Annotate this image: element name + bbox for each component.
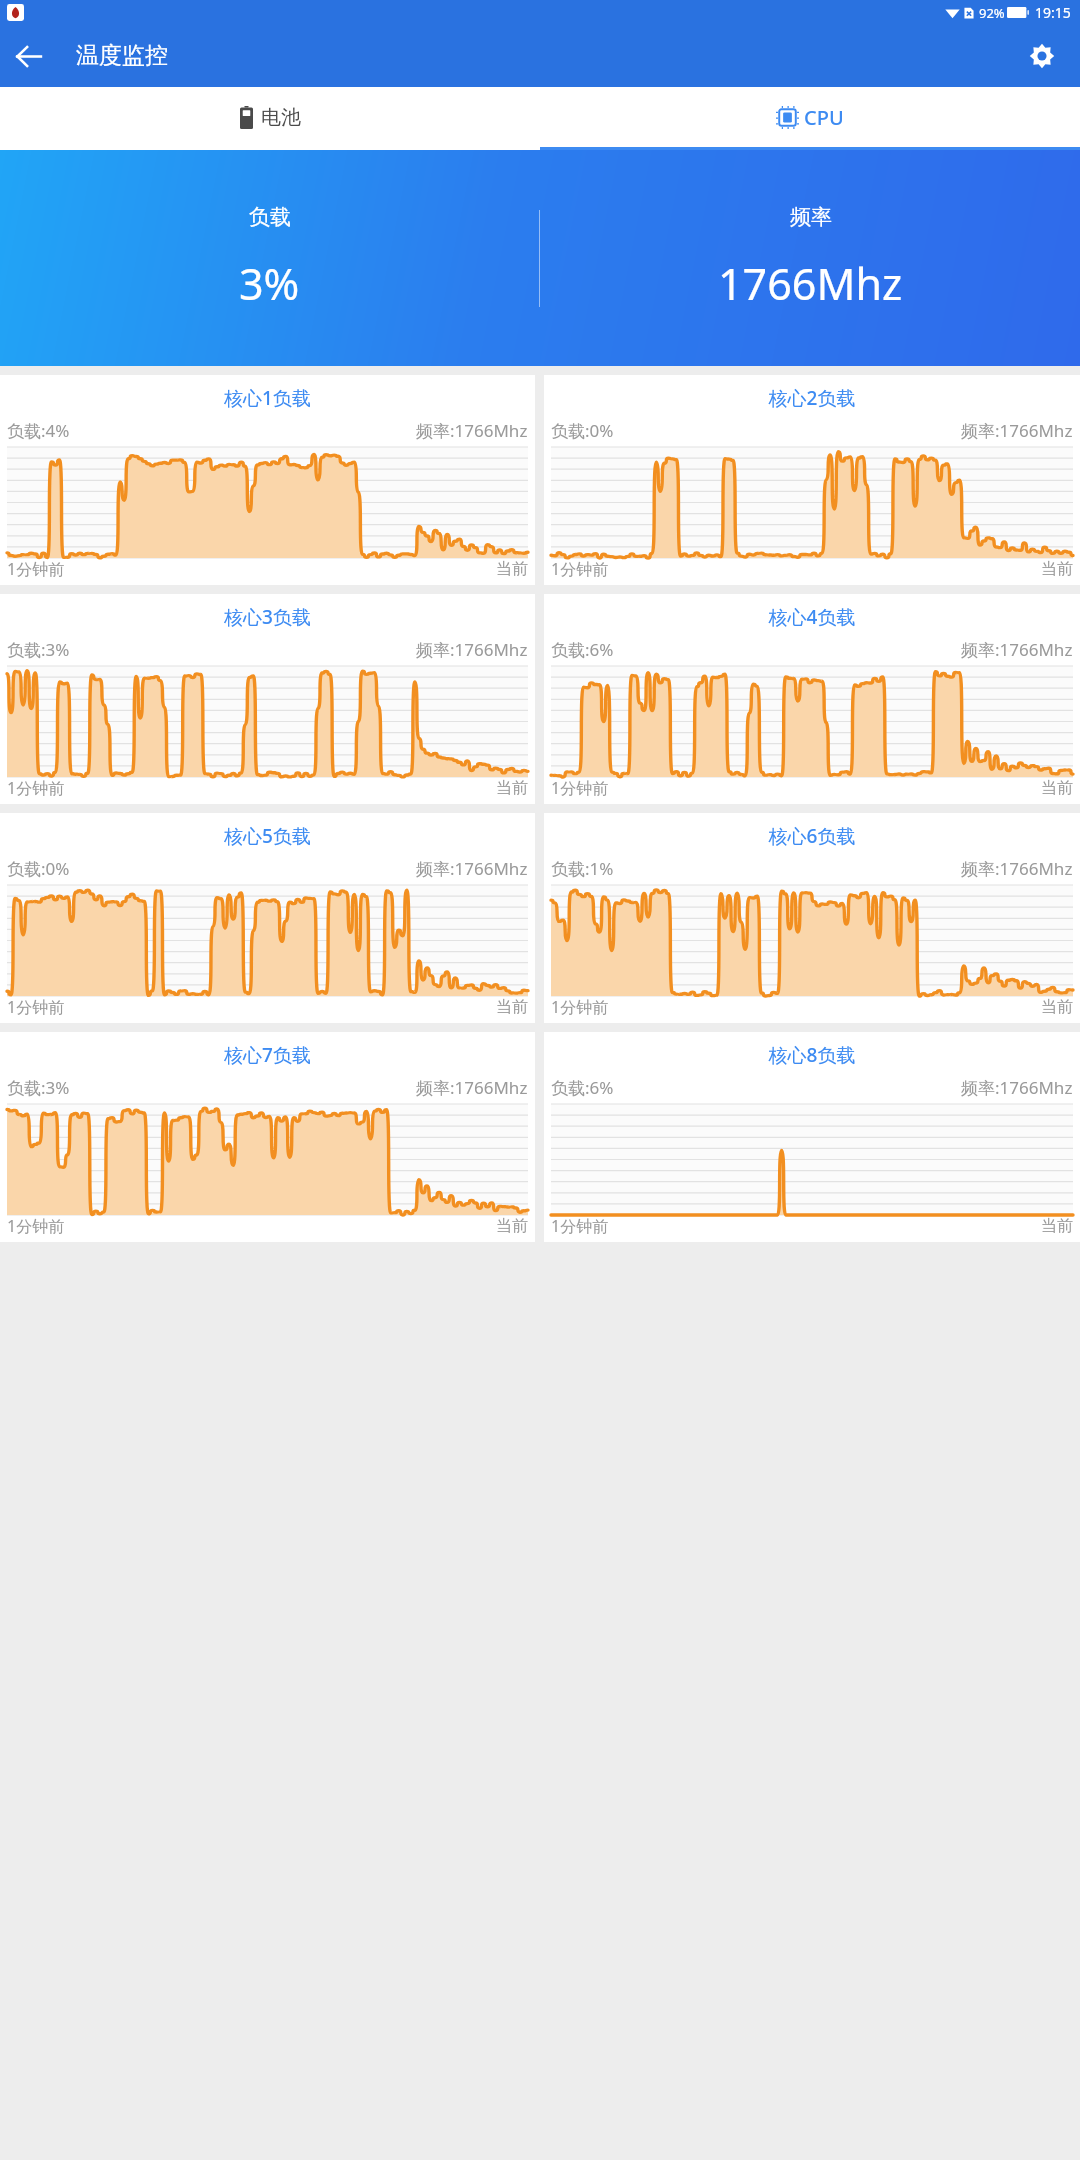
staticText: 负载:0% (551, 419, 614, 442)
staticText: 1分钟前 (551, 1215, 609, 1237)
button[interactable]: 核心6负载 (544, 813, 1080, 1023)
staticText: 频率:1766Mhz (416, 638, 528, 661)
staticText: 频率:1766Mhz (416, 857, 528, 880)
staticText: 当前 (496, 778, 528, 798)
button[interactable]: 核心1负载 (0, 375, 535, 585)
button[interactable]: Back (0, 28, 56, 84)
staticText: 负载:6% (551, 1076, 614, 1099)
staticText: 1分钟前 (551, 996, 609, 1018)
staticText: 19:15 (1035, 3, 1071, 22)
button[interactable]: 核心2负载 (544, 375, 1080, 585)
staticText: 核心5负载 (0, 823, 535, 849)
staticText: 频率:1766Mhz (416, 1076, 528, 1099)
staticText: 当前 (1041, 778, 1073, 798)
staticText: 92% (979, 4, 1005, 22)
staticText: 1分钟前 (551, 777, 609, 799)
staticText: 温度监控 (76, 41, 168, 70)
button[interactable]: Settings (1014, 28, 1070, 84)
staticText: 电池 (261, 105, 301, 130)
staticText: 核心3负载 (0, 604, 535, 630)
staticText: 1分钟前 (7, 777, 65, 799)
staticText: 当前 (1041, 559, 1073, 579)
staticText: 1分钟前 (7, 1215, 65, 1237)
staticText: 负载 (249, 204, 291, 230)
staticText: 频率:1766Mhz (961, 419, 1073, 442)
button[interactable]: CPU (540, 87, 1080, 147)
button[interactable]: 核心5负载 (0, 813, 535, 1023)
button[interactable]: 核心8负载 (544, 1032, 1080, 1242)
staticText: 频率:1766Mhz (961, 638, 1073, 661)
staticText: 负载:4% (7, 419, 70, 442)
staticText: 核心8负载 (544, 1042, 1080, 1068)
staticText: 当前 (496, 997, 528, 1017)
button[interactable]: 核心3负载 (0, 594, 535, 804)
staticText: 核心1负载 (0, 385, 535, 411)
staticText: 频率:1766Mhz (961, 857, 1073, 880)
staticText: 频率:1766Mhz (416, 419, 528, 442)
staticText: 负载:6% (551, 638, 614, 661)
staticText: 负载:3% (7, 638, 70, 661)
staticText: 负载:0% (7, 857, 70, 880)
staticText: 当前 (496, 559, 528, 579)
staticText: 当前 (1041, 1216, 1073, 1236)
staticText: 当前 (496, 1216, 528, 1236)
button[interactable]: 电池 (0, 87, 540, 147)
staticText: 核心7负载 (0, 1042, 535, 1068)
staticText: 频率 (790, 204, 832, 230)
staticText: 3% (239, 254, 300, 313)
staticText: 负载:3% (7, 1076, 70, 1099)
staticText: 负载:1% (551, 857, 614, 880)
button[interactable]: 核心4负载 (544, 594, 1080, 804)
staticText: 频率:1766Mhz (961, 1076, 1073, 1099)
staticText: 当前 (1041, 997, 1073, 1017)
staticText: CPU (804, 104, 844, 131)
button[interactable]: 核心7负载 (0, 1032, 535, 1242)
staticText: 核心4负载 (544, 604, 1080, 630)
staticText: 1分钟前 (7, 558, 65, 580)
staticText: 1分钟前 (7, 996, 65, 1018)
staticText: 1766Mhz (718, 254, 903, 313)
staticText: 1分钟前 (551, 558, 609, 580)
staticText: 核心2负载 (544, 385, 1080, 411)
staticText: 核心6负载 (544, 823, 1080, 849)
